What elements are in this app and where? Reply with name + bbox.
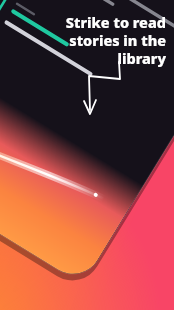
other: Strike gesture arrow (0, 0, 174, 310)
button[interactable]: Strike to read stories in the library (28, 12, 166, 68)
staticText: Strike to read stories in the library (65, 12, 166, 68)
